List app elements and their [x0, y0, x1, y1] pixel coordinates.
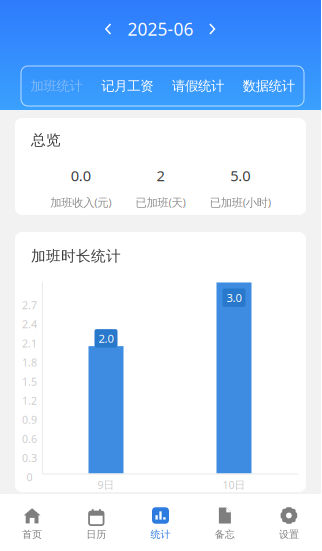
staticText: 备忘 — [215, 528, 235, 541]
staticText: 1.8 — [22, 355, 37, 370]
staticText: 2025-06 — [127, 17, 193, 41]
staticText: 请假统计 — [172, 78, 224, 94]
staticText: 首页 — [22, 528, 42, 541]
button[interactable]: 数据统计 — [233, 66, 304, 106]
button[interactable]: Previous month — [99, 18, 117, 40]
button[interactable]: 记月工资 — [92, 66, 163, 106]
staticText: 9日 — [97, 477, 114, 492]
staticText: 2.1 — [22, 336, 37, 351]
staticText: 已加班(天) — [135, 194, 185, 210]
staticText: 5.0 — [230, 165, 250, 185]
staticText: 统计 — [150, 528, 170, 541]
staticText: 数据统计 — [243, 78, 295, 94]
staticText: 1.2 — [22, 393, 37, 408]
staticText: 10日 — [222, 477, 245, 492]
staticText: 0.6 — [22, 432, 37, 446]
staticText: 记月工资 — [101, 78, 153, 94]
staticText: 总览 — [31, 131, 61, 149]
staticText: 加班时长统计 — [31, 247, 121, 265]
button[interactable]: 加班统计 — [21, 66, 92, 106]
staticText: 2.0 — [98, 331, 113, 346]
staticText: 3.0 — [226, 290, 241, 305]
staticText: 设置 — [279, 528, 299, 541]
staticText: 2 — [156, 165, 164, 185]
staticText: 2.4 — [22, 317, 37, 331]
staticText: 0.9 — [22, 412, 37, 427]
staticText: 0 — [26, 470, 32, 484]
staticText: 已加班(小时) — [210, 194, 271, 210]
button[interactable]: Next month — [203, 18, 221, 40]
staticText: 1.5 — [22, 374, 37, 389]
button[interactable]: 备忘 — [193, 494, 257, 551]
staticText: 加班收入(元) — [50, 194, 111, 210]
button[interactable]: 日历 — [64, 494, 128, 551]
button[interactable]: 请假统计 — [162, 66, 233, 106]
staticText: 日历 — [86, 528, 106, 541]
staticText: 0.0 — [71, 165, 91, 185]
button[interactable]: 统计 — [128, 494, 193, 551]
staticText: 加班统计 — [30, 78, 82, 94]
staticText: 2.7 — [22, 298, 37, 312]
button[interactable]: 设置 — [257, 494, 321, 551]
button[interactable]: 首页 — [0, 494, 64, 551]
staticText: 0.3 — [22, 451, 37, 465]
